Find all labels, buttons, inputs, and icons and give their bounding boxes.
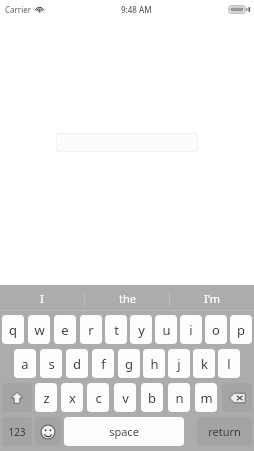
staticText: m [200,389,213,407]
button[interactable]: y [130,315,152,344]
button[interactable]: o [205,315,227,344]
button[interactable]: q [2,315,24,344]
staticText: t [114,321,119,339]
button[interactable]: k [193,349,215,378]
button[interactable]: s [40,349,62,378]
staticText: h [150,355,159,373]
button[interactable]: p [230,315,252,344]
button[interactable]: l [218,349,240,378]
staticText: b [148,389,156,407]
staticText: Carrier [5,4,32,15]
button[interactable]: r [80,315,102,344]
button[interactable]: h [143,349,165,378]
button[interactable]: d [66,349,88,378]
staticText: s [48,355,55,373]
button[interactable]: f [92,349,114,378]
button[interactable]: n [168,383,190,412]
staticText: l [227,355,231,373]
button[interactable]: 123 [2,417,32,446]
staticText: v [122,389,129,407]
button[interactable]: I [0,285,84,311]
button[interactable]: Emoji [35,417,61,446]
staticText: g [125,355,133,373]
button[interactable]: t [105,315,127,344]
staticText: return [208,424,241,439]
staticText: o [212,321,220,339]
button[interactable]: Backspace [222,383,252,412]
staticText: c [95,389,102,407]
staticText: 123 [8,425,26,439]
staticText: n [175,389,184,407]
staticText: u [162,321,171,339]
staticText: I [40,291,44,306]
button[interactable] [56,133,198,152]
button[interactable]: the [85,285,169,311]
staticText: q [9,321,17,339]
staticText: d [73,355,81,373]
staticText: y [138,321,145,339]
staticText: I'm [204,291,221,306]
button[interactable]: z [35,383,57,412]
button[interactable]: v [114,383,136,412]
staticText: x [69,389,76,407]
button[interactable]: j [168,349,190,378]
staticText: the [119,291,136,306]
button[interactable]: return [197,417,252,446]
button[interactable]: e [54,315,76,344]
staticText: space [109,424,139,439]
staticText: i [189,321,193,339]
button[interactable]: m [195,383,217,412]
button[interactable]: x [61,383,83,412]
button[interactable]: b [141,383,163,412]
button[interactable]: I'm [170,285,254,311]
button[interactable]: a [14,349,36,378]
button[interactable]: w [28,315,50,344]
staticText: a [21,355,29,373]
staticText: w [34,321,45,339]
staticText: j [177,355,181,373]
staticText: f [101,355,106,373]
staticText: 9:48 AM [121,4,152,15]
staticText: r [88,321,94,339]
button[interactable]: i [180,315,202,344]
button[interactable]: u [155,315,177,344]
button[interactable]: Shift [2,383,32,412]
staticText: e [61,321,69,339]
staticText: p [237,321,245,339]
button[interactable]: c [87,383,109,412]
staticText: z [43,389,50,407]
button[interactable]: g [118,349,140,378]
staticText: k [201,355,208,373]
button[interactable]: space [64,417,184,446]
